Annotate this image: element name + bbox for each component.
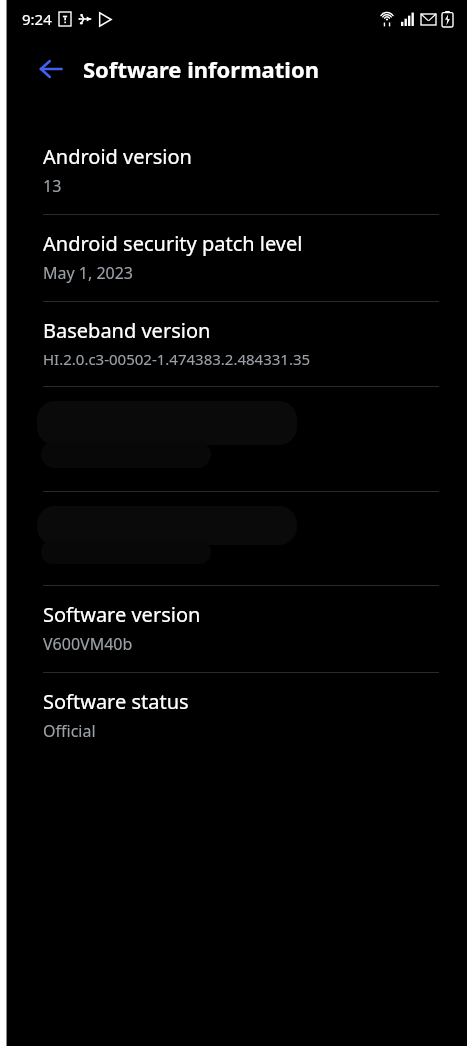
staticText: Android security patch level: [43, 230, 303, 257]
staticText: Software information: [83, 54, 319, 84]
button[interactable]: Software version: [7, 586, 467, 672]
staticText: 13: [43, 175, 62, 197]
staticText: HI.2.0.c3-00502-1.474383.2.484331.35: [43, 349, 311, 369]
button[interactable]: [7, 387, 467, 491]
button[interactable]: Android security patch level: [7, 215, 467, 301]
button[interactable]: [7, 492, 467, 585]
staticText: Software version: [43, 601, 201, 628]
staticText: Official: [43, 720, 96, 742]
staticText: Software status: [43, 688, 189, 715]
staticText: Baseband version: [43, 317, 211, 344]
staticText: Android version: [43, 143, 192, 170]
button[interactable]: Software status: [7, 673, 467, 759]
staticText: V600VM40b: [43, 633, 133, 655]
button[interactable]: Android version: [7, 128, 467, 214]
button[interactable]: Back: [29, 47, 73, 91]
staticText: 9:24: [22, 9, 52, 29]
staticText: May 1, 2023: [43, 262, 134, 284]
button[interactable]: Baseband version: [7, 302, 467, 386]
